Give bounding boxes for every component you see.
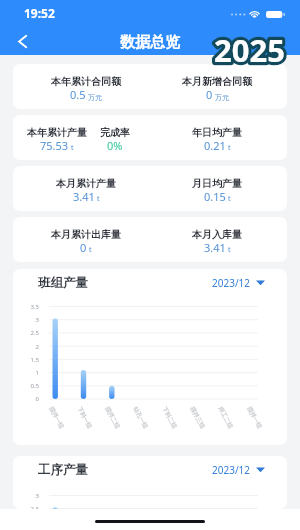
button[interactable]: 本年累计产量 — [13, 115, 287, 160]
staticText: 3.41 — [204, 240, 226, 255]
button[interactable]: Back — [9, 28, 35, 54]
staticText: 2 — [17, 343, 39, 351]
staticText: 月日均产量 — [192, 177, 242, 190]
staticText: 0.21 — [204, 138, 226, 153]
staticText: 19:52 — [24, 5, 55, 21]
button[interactable]: 2023/12 — [212, 276, 265, 290]
staticText: 2025 — [214, 29, 285, 71]
staticText: t — [228, 143, 231, 153]
staticText: 本月入库量 — [192, 228, 242, 241]
staticText: 2.5 — [17, 329, 39, 337]
staticText: 本年累计合同额 — [51, 75, 121, 88]
staticText: 搅拌一组 — [47, 405, 66, 430]
staticText: 本年累计产量 — [27, 126, 87, 139]
staticText: 下料二组 — [160, 405, 179, 430]
staticText: 75.53 — [40, 138, 69, 153]
staticText: 3 — [17, 316, 39, 324]
staticText: 数据总览 — [120, 33, 180, 52]
staticText: 0 — [17, 395, 39, 403]
staticText: 2023/12 — [212, 463, 251, 477]
staticText: 3 — [17, 492, 39, 500]
staticText: 2.5 — [17, 505, 39, 509]
staticText: 0 — [80, 240, 87, 255]
staticText: 万元 — [215, 93, 229, 102]
staticText: t — [97, 194, 100, 204]
staticText: 0.5 — [70, 87, 86, 102]
staticText: 2025 — [214, 29, 285, 71]
staticText: 1 — [17, 369, 39, 377]
button[interactable]: 本月累计产量 — [13, 166, 287, 211]
staticText: t — [89, 245, 92, 255]
staticText: 1.5 — [17, 356, 39, 364]
staticText: 2023/12 — [212, 276, 251, 290]
button[interactable]: 2023/12 — [212, 463, 265, 477]
staticText: 工序产量 — [38, 462, 88, 478]
staticText: 钻孔一组 — [131, 405, 150, 430]
staticText: 3.5 — [17, 303, 39, 311]
staticText: 搅拌三组 — [188, 405, 207, 430]
button[interactable]: 本月累计出库量 — [13, 217, 287, 262]
staticText: 焊工二组 — [216, 405, 235, 430]
staticText: 3.41 — [73, 189, 95, 204]
staticText: 搅拌一组 — [245, 405, 264, 430]
staticText: t — [71, 143, 74, 153]
staticText: 本月累计产量 — [56, 177, 116, 190]
staticText: 年日均产量 — [192, 126, 242, 139]
staticText: 0 — [206, 87, 213, 102]
staticText: 0.15 — [204, 189, 226, 204]
staticText: 0.5 — [17, 382, 39, 390]
staticText: 搅拌二组 — [103, 405, 122, 430]
staticText: t — [228, 245, 231, 255]
staticText: 本月新增合同额 — [182, 75, 252, 88]
button[interactable]: 本年累计合同额 — [13, 64, 287, 109]
staticText: t — [228, 194, 231, 204]
staticText: 下料一组 — [75, 405, 94, 430]
staticText: 完成率 — [100, 126, 130, 139]
staticText: 本月累计出库量 — [51, 228, 121, 241]
staticText: 万元 — [88, 93, 102, 102]
staticText: 0% — [107, 138, 123, 153]
staticText: 班组产量 — [38, 275, 88, 291]
